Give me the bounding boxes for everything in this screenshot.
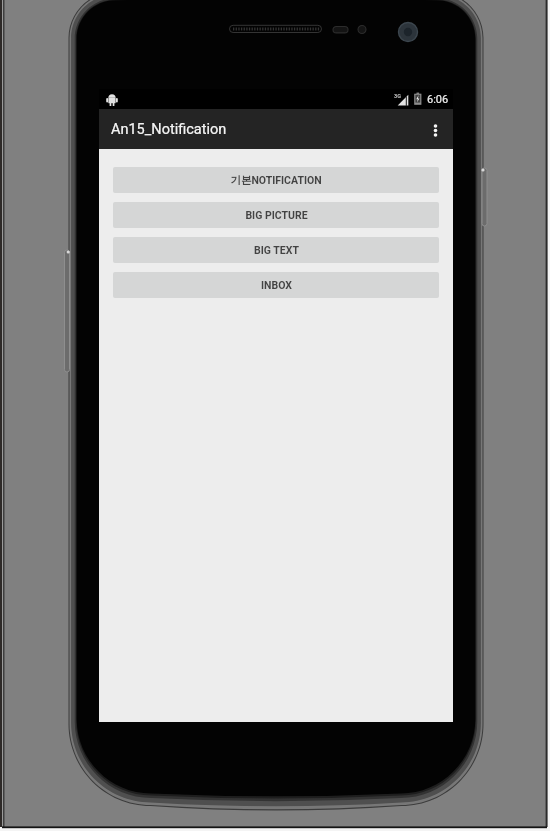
staticText: BIG PICTURE (245, 209, 308, 221)
button[interactable]: INBOX (113, 272, 439, 298)
button[interactable]: More options (419, 109, 453, 149)
staticText: INBOX (261, 279, 292, 291)
staticText: 기본NOTIFICATION (230, 174, 322, 187)
button[interactable]: BIG PICTURE (113, 202, 439, 228)
staticText: 3G (394, 93, 401, 99)
staticText: 6:06 (427, 93, 449, 106)
button[interactable]: 기본NOTIFICATION (113, 167, 439, 193)
button[interactable]: BIG TEXT (113, 237, 439, 263)
staticText: BIG TEXT (254, 244, 299, 256)
staticText: An15_Notification (111, 121, 227, 138)
